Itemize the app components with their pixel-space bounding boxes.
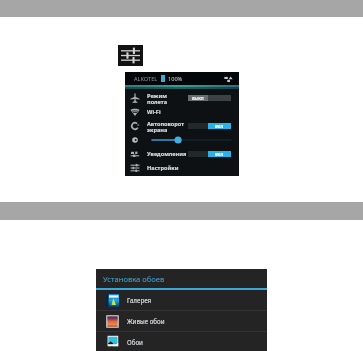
button[interactable]: ВЫКЛ <box>188 95 231 101</box>
staticText: ВЫКЛ <box>192 96 204 101</box>
button[interactable]: Галерея <box>96 290 267 310</box>
button[interactable]: Уведомления <box>125 147 239 161</box>
button[interactable]: Обои <box>96 332 267 351</box>
staticText: 100% <box>168 75 183 83</box>
button[interactable]: ВКЛ <box>188 123 231 129</box>
staticText: ВКЛ <box>215 152 224 157</box>
button[interactable]: Режим полета <box>125 91 239 105</box>
button[interactable]: Автоповорот экрана <box>125 119 239 133</box>
button[interactable]: ВКЛ <box>188 151 231 157</box>
staticText: Установка обоев <box>103 274 165 284</box>
staticText: Живые обои <box>127 317 165 325</box>
button[interactable]: Настройки <box>125 161 239 175</box>
staticText: Галерея <box>127 296 152 304</box>
staticText: Настройки <box>147 164 179 172</box>
staticText: Уведомления <box>147 150 187 158</box>
button[interactable]: Wi-Fi <box>125 105 239 119</box>
staticText: ВКЛ <box>215 124 224 129</box>
staticText: Автоповорот экрана <box>147 120 185 133</box>
staticText: Обои <box>127 338 143 346</box>
button[interactable]: Живые обои <box>96 311 267 331</box>
staticText: ALKOTEL <box>134 75 158 83</box>
staticText: Wi-Fi <box>147 108 161 116</box>
button[interactable] <box>125 133 239 147</box>
button[interactable]: Quick settings shortcut <box>118 45 143 66</box>
staticText: Режим полета <box>147 92 167 105</box>
